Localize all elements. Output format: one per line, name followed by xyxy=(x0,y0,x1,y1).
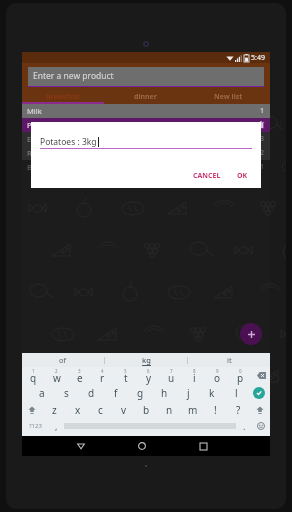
button[interactable]: OK xyxy=(234,169,251,183)
staticText: v xyxy=(121,403,127,417)
button[interactable]: breakfast xyxy=(22,90,104,104)
staticText: , xyxy=(55,420,58,432)
staticText: breakfast xyxy=(46,92,80,102)
button[interactable]: 8 xyxy=(183,367,206,384)
button[interactable]: 7 xyxy=(160,367,183,384)
staticText: y xyxy=(146,371,152,385)
button[interactable]: of xyxy=(22,353,104,367)
staticText: r xyxy=(100,371,105,385)
staticText: x xyxy=(75,403,81,417)
button[interactable]: Enter a new product xyxy=(28,67,264,87)
button[interactable]: 5 xyxy=(114,367,137,384)
staticText: p xyxy=(237,371,244,385)
staticText: n xyxy=(166,403,173,417)
staticText: e xyxy=(77,371,83,385)
staticText: z xyxy=(52,403,57,417)
button[interactable]: Eggs xyxy=(22,132,270,146)
staticText: 3 xyxy=(78,368,81,374)
staticText: o xyxy=(214,371,221,385)
staticText: . xyxy=(243,420,246,432)
staticText: 6 xyxy=(147,368,150,374)
staticText: ! xyxy=(214,403,217,417)
button[interactable]: Shift xyxy=(250,401,270,418)
staticText: c xyxy=(98,403,103,417)
button[interactable]: Emoji xyxy=(252,418,270,434)
button[interactable]: 1 xyxy=(22,367,45,384)
staticText: CANCEL xyxy=(193,171,221,181)
button[interactable]: Back xyxy=(71,436,91,456)
button[interactable]: 9 xyxy=(206,367,229,384)
button[interactable]: g xyxy=(128,384,152,401)
staticText: Enter a new product xyxy=(33,70,114,82)
button[interactable]: d xyxy=(79,384,104,401)
button[interactable]: Backspace xyxy=(252,367,270,384)
staticText: Milk xyxy=(27,106,42,116)
staticText: 8 xyxy=(193,368,196,374)
staticText: a xyxy=(39,386,45,400)
staticText: 9 xyxy=(216,368,219,374)
button[interactable]: it xyxy=(188,353,270,367)
staticText: 1 xyxy=(32,368,35,374)
button[interactable]: h xyxy=(152,384,176,401)
staticText: Bread xyxy=(27,162,48,172)
button[interactable]: n xyxy=(158,401,181,418)
button[interactable]: Enter xyxy=(248,384,270,401)
button[interactable]: dinner xyxy=(104,90,187,104)
button[interactable]: c xyxy=(89,401,112,418)
button[interactable]: b xyxy=(135,401,158,418)
staticText: Eggs xyxy=(27,134,44,144)
button[interactable]: Potatoes : 3kg xyxy=(40,135,252,149)
button[interactable]: CANCEL xyxy=(190,169,224,183)
button[interactable]: Potatoes xyxy=(22,118,270,132)
button[interactable]: 0 xyxy=(229,367,252,384)
staticText: m xyxy=(188,403,198,417)
button[interactable]: ?123 xyxy=(22,418,48,434)
staticText: h xyxy=(161,386,168,400)
button[interactable]: New list xyxy=(187,90,270,104)
button[interactable]: Home xyxy=(132,436,152,456)
button[interactable]: k xyxy=(200,384,224,401)
button[interactable]: s xyxy=(54,384,79,401)
button[interactable]: . xyxy=(236,418,252,434)
button[interactable]: x xyxy=(66,401,89,418)
staticText: j xyxy=(187,386,190,400)
button[interactable]: f xyxy=(104,384,128,401)
staticText: f xyxy=(114,386,118,400)
button[interactable]: Add product xyxy=(240,323,262,345)
staticText: ? xyxy=(236,403,241,417)
button[interactable]: m xyxy=(181,401,204,418)
staticText: 0 xyxy=(239,368,242,374)
staticText: 5 xyxy=(124,368,127,374)
button[interactable]: ! xyxy=(204,401,227,418)
button[interactable]: 6 xyxy=(137,367,160,384)
button[interactable]: l xyxy=(224,384,248,401)
staticText: 2 xyxy=(260,148,265,158)
button[interactable]: 3 xyxy=(68,367,91,384)
staticText: Rice xyxy=(27,148,42,158)
staticText: OK xyxy=(237,171,248,181)
button[interactable]: , xyxy=(48,418,64,434)
staticText: dinner xyxy=(134,92,157,102)
staticText: ?123 xyxy=(29,422,42,430)
button[interactable]: ? xyxy=(227,401,250,418)
staticText: 7 xyxy=(170,368,173,374)
button[interactable]: kg xyxy=(105,353,187,367)
button[interactable]: Shift xyxy=(22,401,42,418)
button[interactable]: Bread xyxy=(22,160,270,174)
button[interactable]: 4 xyxy=(91,367,114,384)
staticText: u xyxy=(168,371,175,385)
button[interactable]: a xyxy=(29,384,54,401)
button[interactable]: j xyxy=(176,384,200,401)
button[interactable]: Milk xyxy=(22,104,270,118)
staticText: of xyxy=(59,355,67,365)
staticText: 1 xyxy=(260,162,265,172)
button[interactable]: v xyxy=(112,401,135,418)
button[interactable]: z xyxy=(42,401,66,418)
button[interactable]: Rice xyxy=(22,146,270,160)
staticText: Potatoes : 3kg xyxy=(40,136,97,148)
staticText: 3 xyxy=(260,134,265,144)
staticText: t xyxy=(124,371,128,385)
button[interactable]: 2 xyxy=(45,367,68,384)
button[interactable]: Recents xyxy=(193,436,213,456)
